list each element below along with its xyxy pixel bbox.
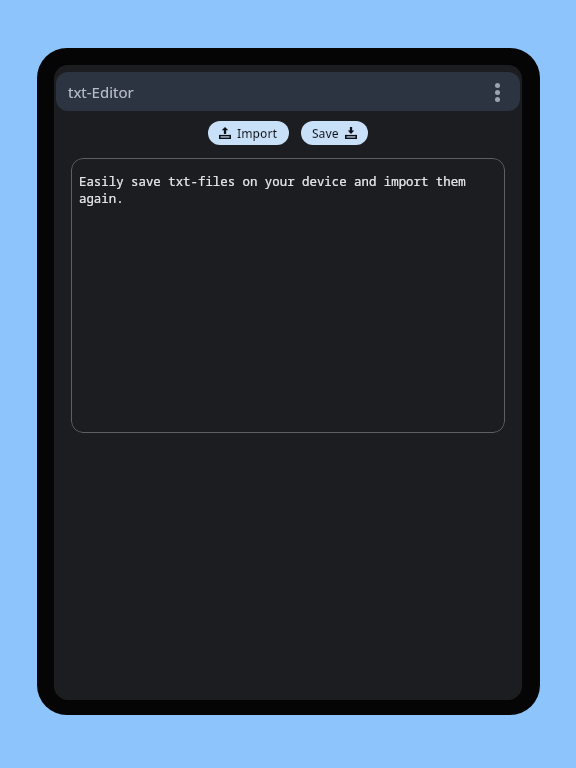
staticText: Easily save txt-files on your device and…: [79, 173, 505, 207]
staticText: Import: [237, 125, 278, 141]
button[interactable]: Import: [208, 121, 289, 145]
staticText: Save: [312, 125, 339, 141]
staticText: txt-Editor: [68, 82, 134, 102]
button[interactable]: More options: [482, 77, 512, 107]
button[interactable]: Easily save txt-files on your device and…: [71, 158, 505, 433]
button[interactable]: Save: [301, 121, 368, 145]
